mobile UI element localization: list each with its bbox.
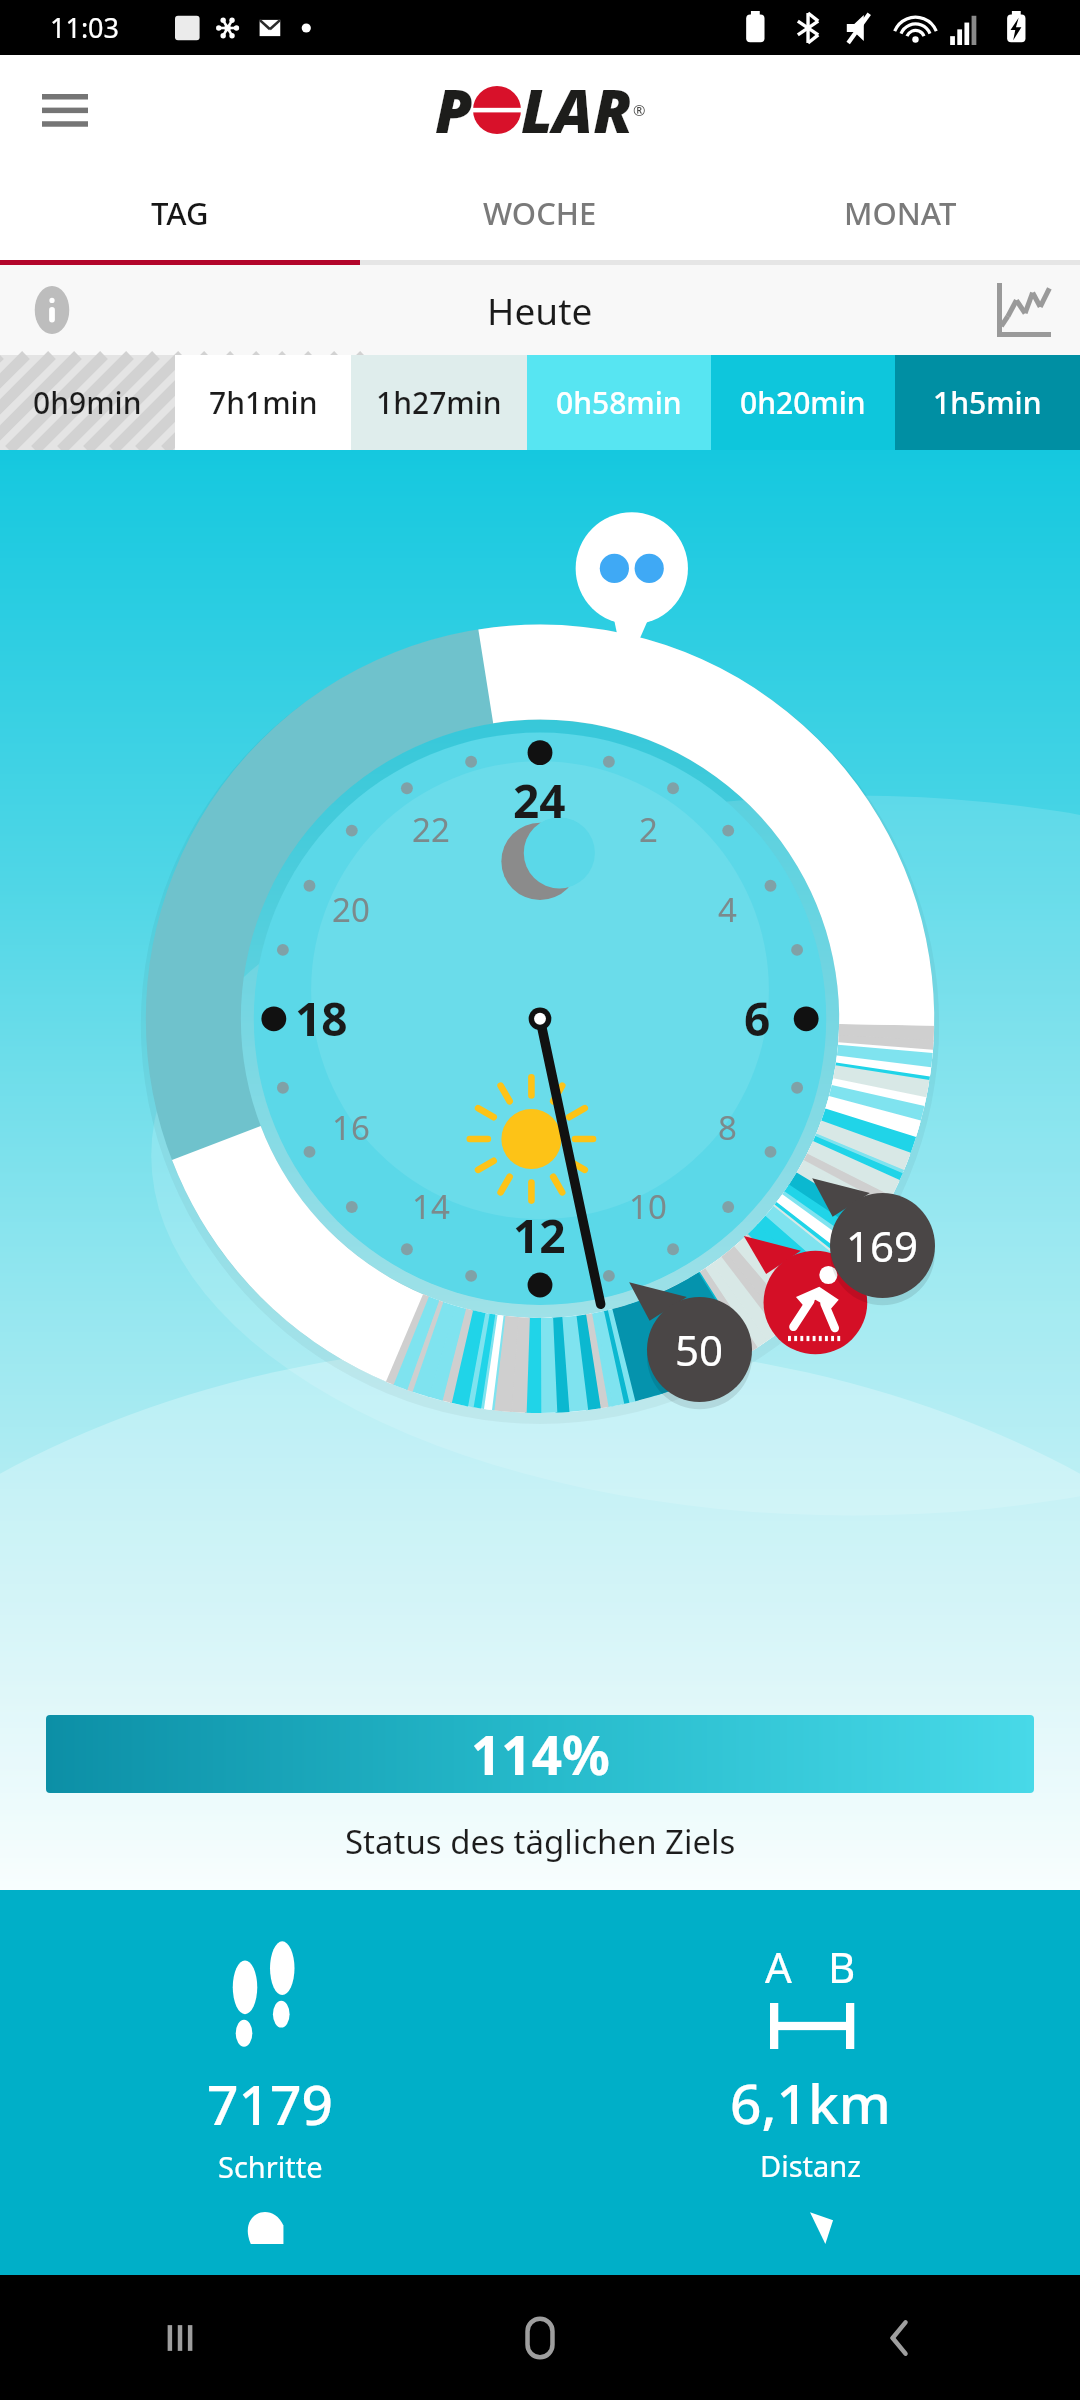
staticText: 1h5min — [933, 382, 1042, 423]
staticText: 8 — [718, 1105, 737, 1150]
staticText: 7179 — [207, 2066, 333, 2141]
button[interactable]: TAG — [0, 165, 360, 260]
button[interactable]: Trend chart — [988, 274, 1060, 346]
staticText: A — [765, 1938, 792, 1995]
staticText: 6,1km — [730, 2065, 891, 2140]
staticText: 169 — [846, 1217, 919, 1274]
staticText: ® — [633, 100, 646, 120]
button[interactable]: 1h5min — [895, 355, 1080, 450]
staticText: 14 — [412, 1184, 450, 1229]
staticText: TAG — [151, 192, 209, 234]
button[interactable]: 114% — [46, 1715, 1034, 1793]
button[interactable]: A — [540, 1938, 1080, 2185]
staticText: 12 — [513, 1204, 566, 1267]
button[interactable]: Back — [720, 2275, 1080, 2400]
button[interactable]: 7h1min — [175, 355, 351, 450]
staticText: 6 — [744, 987, 771, 1050]
staticText: 22 — [412, 807, 450, 852]
staticText: 18 — [295, 987, 348, 1050]
button[interactable]: 7179 — [0, 1938, 540, 2186]
button[interactable]: 0h58min — [527, 355, 711, 450]
staticText: 16 — [332, 1105, 370, 1150]
button[interactable]: Menu — [28, 73, 102, 147]
staticText: 50 — [675, 1321, 724, 1378]
staticText: 114% — [471, 1718, 610, 1790]
staticText: 0h58min — [556, 382, 682, 423]
staticText: Distanz — [760, 2146, 861, 2185]
button[interactable]: Recent apps — [0, 2275, 360, 2400]
staticText: 20 — [332, 887, 370, 932]
staticText: B — [828, 1938, 856, 1995]
staticText: Heute — [487, 285, 593, 335]
button[interactable]: Info — [20, 278, 84, 342]
staticText: WOCHE — [483, 192, 597, 234]
staticText: 1h27min — [376, 382, 502, 423]
button[interactable]: MONAT — [720, 165, 1080, 260]
staticText: 7h1min — [209, 382, 318, 423]
staticText: MONAT — [844, 192, 957, 234]
button[interactable]: 1h27min — [351, 355, 527, 450]
staticText: 4 — [718, 887, 737, 932]
staticText: 0h20min — [740, 382, 866, 423]
staticText: 2 — [639, 807, 658, 852]
staticText: Status des täglichen Ziels — [345, 1819, 736, 1864]
staticText: 11:03 — [50, 9, 120, 46]
staticText: P — [435, 69, 473, 151]
button[interactable]: 0h20min — [711, 355, 895, 450]
button[interactable]: WOCHE — [360, 165, 720, 260]
staticText: 0h9min — [33, 382, 142, 423]
staticText: 10 — [629, 1184, 667, 1229]
staticText: LAR — [521, 69, 633, 151]
staticText: 24 — [513, 769, 566, 832]
button[interactable]: 0h9min — [0, 355, 175, 450]
button[interactable]: Home — [360, 2275, 720, 2400]
staticText: Schritte — [218, 2147, 323, 2186]
